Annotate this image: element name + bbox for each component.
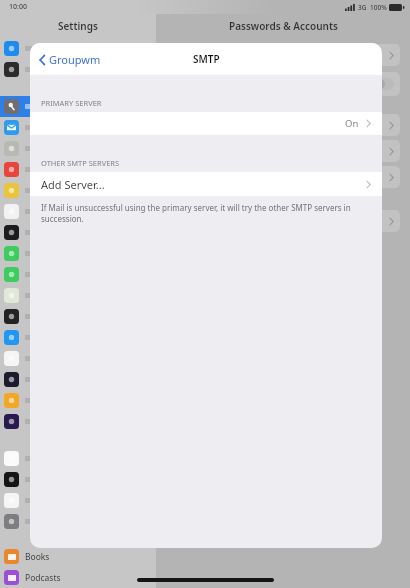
- button[interactable]: [0, 96, 156, 117]
- button[interactable]: [164, 72, 400, 96]
- button[interactable]: [0, 390, 156, 411]
- button[interactable]: [0, 285, 156, 306]
- staticText: OTHER SMTP SERVERS: [41, 158, 120, 168]
- button[interactable]: [164, 166, 400, 188]
- button[interactable]: [0, 490, 156, 511]
- button[interactable]: [0, 469, 156, 490]
- button[interactable]: [164, 114, 400, 136]
- button[interactable]: Books: [0, 546, 156, 567]
- button[interactable]: [0, 38, 156, 59]
- button[interactable]: [0, 306, 156, 327]
- button[interactable]: [0, 201, 156, 222]
- button[interactable]: [0, 264, 156, 285]
- button[interactable]: On: [30, 112, 382, 135]
- staticText: Groupwm: [49, 52, 101, 67]
- button[interactable]: [164, 140, 400, 162]
- button[interactable]: [164, 210, 400, 232]
- button[interactable]: [0, 448, 156, 469]
- button[interactable]: [0, 159, 156, 180]
- button[interactable]: [0, 117, 156, 138]
- button[interactable]: [0, 138, 156, 159]
- button[interactable]: Add Server...: [30, 172, 382, 196]
- button[interactable]: [0, 348, 156, 369]
- staticText: On: [345, 117, 359, 130]
- staticText: Passwords & Accounts: [229, 19, 338, 33]
- button[interactable]: Podcasts: [0, 567, 156, 588]
- button[interactable]: [164, 44, 400, 66]
- staticText: SMTP: [193, 52, 220, 66]
- button[interactable]: [0, 243, 156, 264]
- button[interactable]: [0, 222, 156, 243]
- staticText: Add Server...: [41, 177, 105, 192]
- staticText: 3G: [358, 3, 367, 12]
- button[interactable]: [0, 327, 156, 348]
- staticText: PRIMARY SERVER: [41, 98, 102, 108]
- staticText: Podcasts: [25, 572, 61, 584]
- button[interactable]: [0, 180, 156, 201]
- staticText: 10:00: [9, 2, 27, 12]
- button[interactable]: [0, 59, 156, 80]
- button[interactable]: Groupwm: [37, 48, 103, 71]
- staticText: Books: [25, 551, 50, 563]
- button[interactable]: [0, 511, 156, 532]
- button[interactable]: [0, 369, 156, 390]
- staticText: If Mail is unsuccessful using the primar…: [41, 202, 371, 224]
- button[interactable]: [0, 411, 156, 432]
- staticText: Settings: [58, 19, 98, 33]
- staticText: 100%: [370, 3, 387, 12]
